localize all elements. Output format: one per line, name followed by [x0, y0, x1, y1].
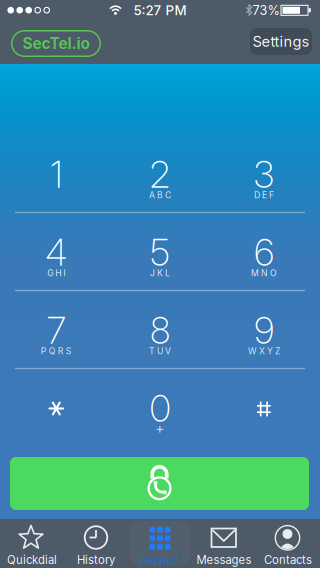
- button[interactable]: 2: [110, 134, 210, 212]
- staticText: 3: [253, 152, 274, 197]
- staticText: 5:27 PM: [133, 2, 186, 18]
- staticText: 73%: [252, 3, 279, 18]
- button[interactable]: 4: [6, 212, 106, 290]
- button[interactable]: SecTel.io: [11, 30, 101, 57]
- button[interactable]: Settings: [250, 28, 312, 55]
- staticText: P Q R S: [41, 346, 72, 356]
- button[interactable]: 5: [110, 212, 210, 290]
- button[interactable]: 8: [110, 290, 210, 368]
- staticText: J K L: [150, 268, 170, 278]
- staticText: Quickdial: [7, 553, 57, 567]
- staticText: D E F: [254, 190, 274, 200]
- staticText: 6: [254, 230, 274, 275]
- button[interactable]: Messages: [192, 519, 256, 568]
- button[interactable]: 0: [110, 368, 210, 446]
- button[interactable]: 1: [6, 134, 106, 212]
- staticText: Keypad: [140, 553, 179, 567]
- staticText: 0: [149, 386, 170, 431]
- staticText: Settings: [252, 33, 309, 50]
- staticText: A B C: [149, 190, 171, 200]
- button[interactable]: 6: [214, 212, 314, 290]
- staticText: W X Y Z: [248, 346, 280, 356]
- staticText: 1: [50, 152, 62, 197]
- staticText: Contacts: [264, 553, 312, 567]
- staticText: SecTel.io: [22, 34, 89, 53]
- button[interactable]: Star: [6, 368, 106, 446]
- staticText: 2: [149, 152, 170, 197]
- staticText: 9: [254, 308, 274, 353]
- staticText: Messages: [196, 553, 251, 567]
- staticText: +: [155, 420, 165, 437]
- button[interactable]: 3: [214, 134, 314, 212]
- button[interactable]: Contacts: [256, 519, 320, 568]
- staticText: 5: [150, 230, 170, 275]
- staticText: M N O: [251, 268, 277, 278]
- button[interactable]: 9: [214, 290, 314, 368]
- button[interactable]: Quickdial: [0, 519, 64, 568]
- staticText: History: [77, 553, 115, 567]
- staticText: 4: [45, 230, 67, 275]
- staticText: T U V: [149, 346, 171, 356]
- button[interactable]: Keypad: [128, 519, 192, 568]
- staticText: G H I: [47, 268, 65, 278]
- button[interactable]: History: [64, 519, 128, 568]
- staticText: 8: [150, 308, 170, 353]
- staticText: 7: [47, 308, 66, 353]
- button[interactable]: Secure call: [10, 457, 309, 510]
- button[interactable]: 7: [6, 290, 106, 368]
- button[interactable]: Pound: [214, 368, 314, 446]
